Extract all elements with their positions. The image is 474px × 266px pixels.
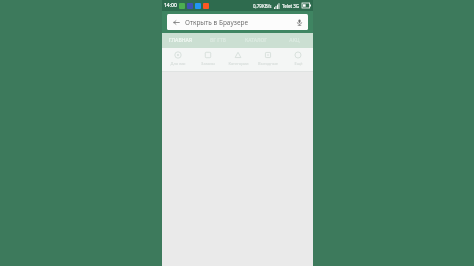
- staticText: 0,79KB/s: [253, 3, 272, 9]
- button[interactable]: Для вас: [162, 51, 193, 72]
- button[interactable]: Ещё: [283, 51, 313, 72]
- staticText: АКЦ: [289, 37, 300, 44]
- staticText: Выгодные: [258, 61, 278, 66]
- staticText: Открыть в Браузере: [185, 18, 249, 27]
- staticText: Telet 3G: [282, 3, 300, 9]
- button[interactable]: Категории: [223, 51, 253, 72]
- button[interactable]: Выгодные: [253, 51, 283, 72]
- staticText: Категории: [228, 61, 249, 66]
- button[interactable]: ВГ ГТБ: [199, 33, 237, 48]
- staticText: Для вас: [170, 61, 186, 66]
- staticText: КАТАЛОГ: [245, 37, 267, 44]
- staticText: Заказы: [201, 61, 215, 66]
- staticText: 14:00: [164, 2, 177, 9]
- staticText: ВГ ГТБ: [210, 37, 226, 44]
- button[interactable]: КАТАЛОГ: [237, 33, 275, 48]
- button[interactable]: ГЛАВНАЯ: [162, 33, 199, 48]
- button[interactable]: Back: [171, 17, 181, 27]
- button[interactable]: Back: [167, 14, 308, 30]
- button[interactable]: Voice search: [294, 17, 304, 27]
- staticText: Ещё: [294, 61, 303, 66]
- button[interactable]: Заказы: [193, 51, 223, 72]
- staticText: ГЛАВНАЯ: [169, 37, 192, 44]
